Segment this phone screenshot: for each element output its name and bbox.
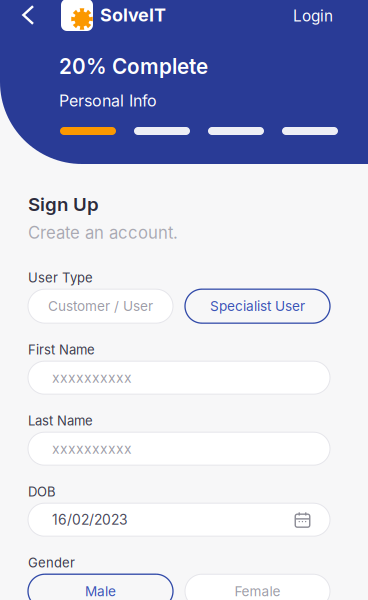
- staticText: Personal Info: [59, 91, 157, 110]
- staticText: DOB: [28, 484, 56, 500]
- button[interactable]: xxxxxxxxxx: [28, 361, 330, 394]
- staticText: Gender: [28, 555, 75, 571]
- button[interactable]: Customer / User: [28, 289, 173, 323]
- staticText: Sign Up: [28, 193, 99, 216]
- button[interactable]: Login: [285, 0, 341, 32]
- button[interactable]: 16/02/2023: [28, 503, 330, 536]
- staticText: Create an account.: [28, 223, 178, 243]
- staticText: Customer / User: [48, 298, 153, 314]
- button[interactable]: xxxxxxxxxx: [28, 432, 330, 465]
- staticText: First Name: [28, 342, 95, 358]
- button[interactable]: Back: [10, 0, 46, 33]
- staticText: Login: [293, 7, 333, 25]
- staticText: xxxxxxxxxx: [52, 440, 132, 457]
- staticText: Female: [234, 583, 280, 599]
- button[interactable]: Female: [185, 574, 330, 600]
- staticText: SolveIT: [100, 4, 166, 26]
- staticText: Last Name: [28, 413, 93, 429]
- button[interactable]: Specialist User: [185, 289, 330, 323]
- staticText: 20% Complete: [59, 54, 208, 79]
- button[interactable]: Male: [28, 574, 173, 600]
- staticText: Male: [85, 583, 116, 599]
- staticText: 16/02/2023: [52, 511, 128, 528]
- staticText: xxxxxxxxxx: [52, 369, 132, 386]
- staticText: User Type: [28, 270, 93, 286]
- staticText: Specialist User: [210, 298, 305, 314]
